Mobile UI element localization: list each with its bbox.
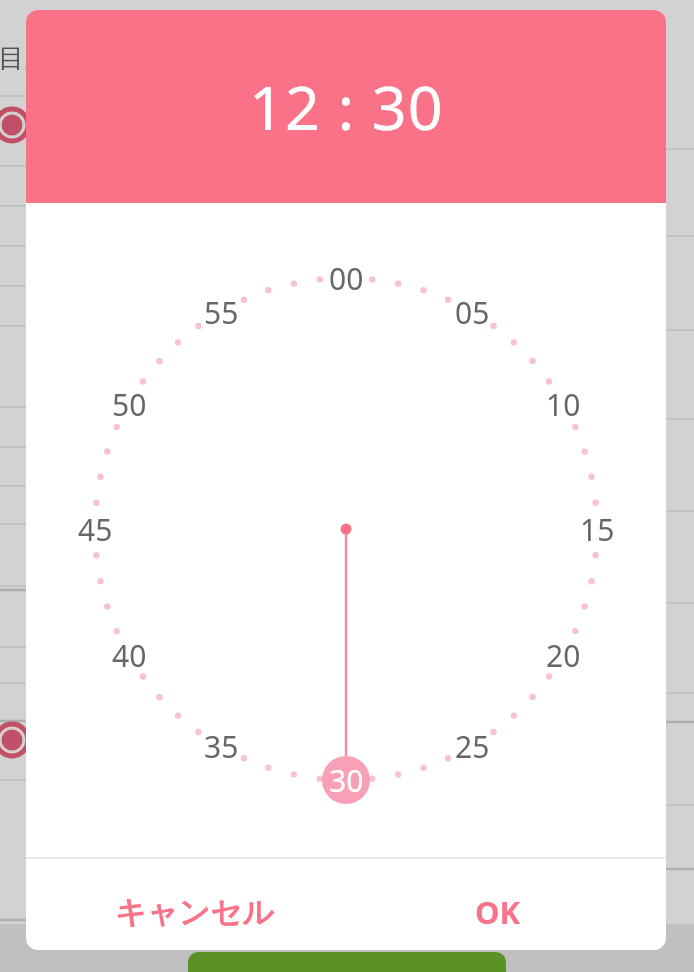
staticText: 30 — [329, 760, 364, 801]
staticText: 40 — [112, 635, 147, 676]
staticText: キャンセル — [115, 893, 274, 932]
staticText: 00 — [329, 258, 364, 299]
staticText: 15 — [580, 509, 615, 550]
staticText: OK — [475, 891, 521, 933]
staticText: 05 — [455, 292, 490, 333]
staticText: 35 — [204, 726, 239, 767]
button[interactable]: OK — [26, 10, 186, 90]
staticText: 20 — [546, 635, 581, 676]
staticText: 25 — [455, 726, 490, 767]
staticText: 45 — [78, 509, 113, 550]
staticText: 目川 — [0, 42, 50, 75]
staticText: 50 — [112, 384, 147, 425]
staticText: 12 : 30 — [249, 65, 444, 148]
staticText: 55 — [204, 292, 239, 333]
button[interactable]: キャンセル — [26, 10, 246, 90]
staticText: 10 — [546, 384, 581, 425]
